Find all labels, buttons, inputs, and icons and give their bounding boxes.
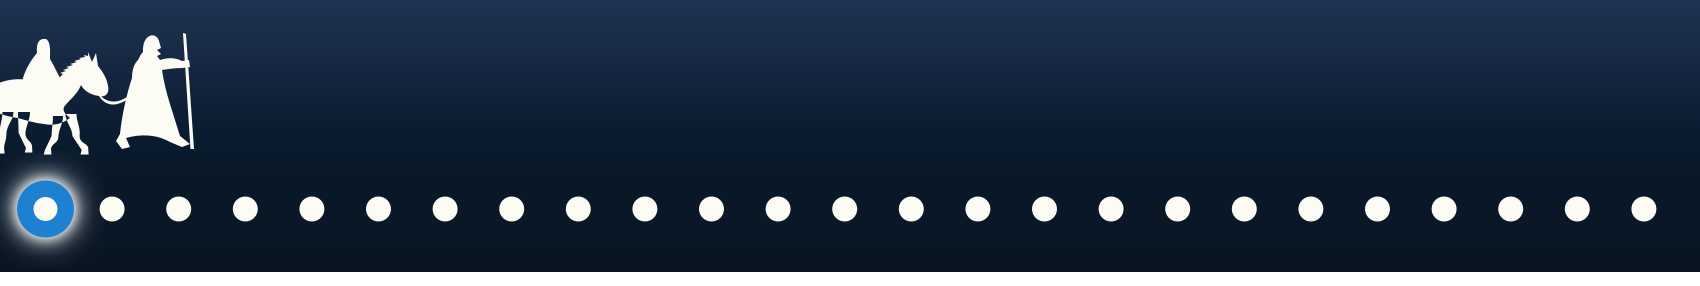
button[interactable]: Step 21 xyxy=(1365,196,1390,221)
button[interactable]: Step 8 xyxy=(499,196,524,221)
button[interactable]: Step 9 xyxy=(566,196,591,221)
button[interactable]: Step 11 xyxy=(699,196,724,221)
button[interactable]: Step 25 xyxy=(1631,196,1656,221)
button[interactable]: Step 6 xyxy=(366,196,391,221)
button[interactable]: Step 10 xyxy=(632,196,657,221)
button[interactable]: Step 24 xyxy=(1565,196,1590,221)
button[interactable]: Step 13 xyxy=(832,196,857,221)
button[interactable]: Step 4 xyxy=(233,196,258,221)
button[interactable]: Step 3 xyxy=(166,196,191,221)
button[interactable]: Step 23 xyxy=(1498,196,1523,221)
button[interactable]: Step 17 xyxy=(1099,196,1124,221)
button[interactable]: Step 1, current xyxy=(17,180,74,237)
button[interactable]: Step 12 xyxy=(766,196,791,221)
button[interactable]: Step 15 xyxy=(965,196,990,221)
button[interactable]: Step 18 xyxy=(1165,196,1190,221)
button[interactable]: Step 19 xyxy=(1232,196,1257,221)
button[interactable]: Step 5 xyxy=(299,196,324,221)
button[interactable]: Step 22 xyxy=(1432,196,1457,221)
button[interactable]: Step 16 xyxy=(1032,196,1057,221)
button[interactable]: Step 2 xyxy=(100,196,125,221)
button[interactable]: Step 14 xyxy=(899,196,924,221)
button[interactable]: Step 20 xyxy=(1298,196,1323,221)
button[interactable]: Step 7 xyxy=(433,196,458,221)
